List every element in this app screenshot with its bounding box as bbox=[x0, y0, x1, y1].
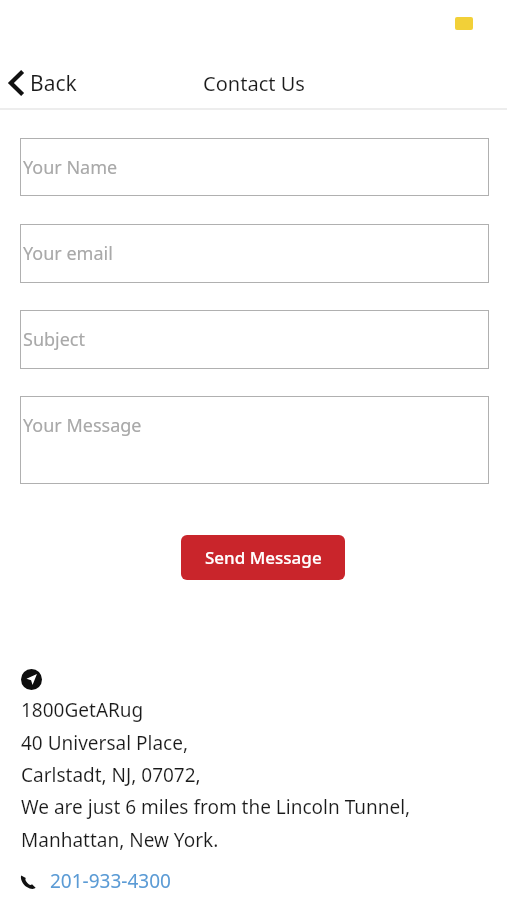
button[interactable]: Subject bbox=[20, 310, 489, 369]
button[interactable]: Your Name bbox=[20, 138, 489, 196]
other: Location bbox=[21, 669, 42, 690]
button[interactable]: Send Message bbox=[181, 535, 345, 580]
staticText: 201-933-4300 bbox=[50, 868, 171, 894]
button[interactable]: 201-933-4300 bbox=[18, 866, 171, 896]
staticText: Your Message bbox=[23, 413, 142, 438]
staticText: Your email bbox=[23, 241, 113, 266]
button[interactable]: Your email bbox=[20, 224, 489, 283]
staticText: Send Message bbox=[205, 546, 322, 569]
staticText: Contact Us bbox=[203, 70, 305, 97]
staticText: Back bbox=[30, 69, 77, 98]
staticText: Carlstadt, NJ, 07072, bbox=[21, 762, 201, 788]
staticText: Subject bbox=[23, 327, 86, 352]
staticText: Manhattan, New York. bbox=[21, 827, 219, 853]
staticText: 40 Universal Place, bbox=[21, 730, 189, 756]
staticText: Your Name bbox=[23, 155, 118, 180]
button[interactable]: Back bbox=[8, 64, 77, 102]
staticText: We are just 6 miles from the Lincoln Tun… bbox=[21, 794, 411, 820]
staticText: 1800GetARug bbox=[21, 697, 144, 723]
button[interactable]: Your Message bbox=[20, 396, 489, 484]
